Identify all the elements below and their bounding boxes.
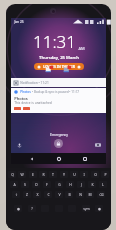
staticText: F (46, 182, 48, 187)
staticText: E (32, 172, 34, 177)
button[interactable]: P (101, 171, 109, 178)
button[interactable]: ● (95, 205, 103, 212)
button[interactable]: X (33, 191, 41, 198)
staticText: D (35, 182, 38, 187)
staticText: N (79, 192, 82, 197)
staticText: S (24, 182, 26, 187)
button[interactable] (23, 107, 30, 110)
staticText: G (58, 182, 61, 187)
button[interactable]: F (43, 181, 51, 188)
button[interactable]: Unlock (54, 139, 63, 148)
button[interactable]: sym (82, 205, 90, 212)
staticText: R (42, 172, 45, 177)
staticText: • Backup & sync is paused • 11:17 (32, 90, 79, 94)
staticText: O (94, 172, 97, 177)
button[interactable]: Voice assistant (15, 141, 23, 149)
button[interactable]: Back (27, 154, 37, 164)
button[interactable]: C (44, 191, 52, 198)
staticText: Photos (14, 96, 28, 101)
button[interactable]: LOVE IS IN THE AIR (37, 64, 81, 69)
staticText: Notification • 11:21 (20, 81, 49, 85)
staticText: LOVE IS IN THE AIR (43, 64, 75, 69)
staticText: ? (31, 206, 33, 211)
button[interactable]: S (21, 181, 29, 188)
staticText: ⌫ (99, 193, 104, 197)
button[interactable]: Z (23, 191, 31, 198)
staticText: H (69, 182, 72, 187)
button[interactable]: T (49, 171, 57, 178)
button[interactable]: ⇧ (12, 191, 20, 198)
button[interactable]: Photos (14, 90, 103, 111)
staticText: T (52, 172, 54, 177)
button[interactable]: E (29, 171, 37, 178)
staticText: A (13, 182, 16, 187)
staticText: U (73, 172, 76, 177)
button[interactable]: I (80, 171, 88, 178)
button[interactable] (63, 65, 72, 74)
button[interactable]: Home (54, 154, 64, 164)
staticText: This device is unattached (14, 101, 52, 105)
staticText: V (58, 192, 61, 197)
button[interactable]: G (55, 181, 63, 188)
staticText: Q (11, 172, 14, 177)
button[interactable]: B (65, 191, 73, 198)
staticText: Jan 25 (14, 20, 24, 24)
staticText: Emergency (50, 132, 68, 137)
button[interactable]: U (70, 171, 78, 178)
button[interactable]: Y (60, 171, 68, 178)
button[interactable]: ? (28, 205, 36, 212)
button[interactable]: O (91, 171, 99, 178)
staticText: 11:31 (33, 30, 76, 53)
staticText: I (83, 172, 85, 177)
staticText: K (91, 182, 94, 187)
staticText: Y (63, 172, 65, 177)
staticText: sym (83, 206, 90, 211)
button[interactable]: Notification • 11:21 (14, 78, 103, 87)
button[interactable]: V (55, 191, 63, 198)
staticText: ⇧ (15, 193, 18, 197)
button[interactable]: ⌫ (97, 191, 105, 198)
button[interactable]: Recent apps (80, 154, 90, 164)
staticText: AM (78, 46, 85, 51)
staticText: Photos (20, 90, 31, 94)
staticText: X (36, 192, 39, 197)
staticText: L (102, 182, 104, 187)
button[interactable] (45, 65, 54, 74)
staticText: ● (17, 207, 20, 211)
staticText: Z (26, 192, 28, 197)
staticText: J (81, 182, 82, 187)
staticText: C (47, 192, 50, 197)
button[interactable]: Q (8, 171, 16, 178)
staticText: B (68, 192, 71, 197)
staticText: P (104, 172, 107, 177)
button[interactable]: N (76, 191, 84, 198)
button[interactable]: R (39, 171, 47, 178)
button[interactable]: D (32, 181, 40, 188)
button[interactable]: ● (14, 205, 22, 212)
staticText: M (88, 192, 92, 197)
button[interactable]: A (10, 181, 18, 188)
button[interactable] (14, 107, 21, 110)
staticText: Thursday, 25 March (39, 55, 79, 61)
button[interactable]: Camera (94, 141, 102, 149)
button[interactable]: W (18, 171, 26, 178)
button[interactable]: J (77, 181, 85, 188)
staticText: ● (98, 207, 101, 211)
button[interactable]: H (66, 181, 74, 188)
button[interactable]: M (86, 191, 94, 198)
button[interactable]: L (99, 181, 107, 188)
button[interactable]: K (88, 181, 96, 188)
staticText: W (20, 172, 24, 177)
